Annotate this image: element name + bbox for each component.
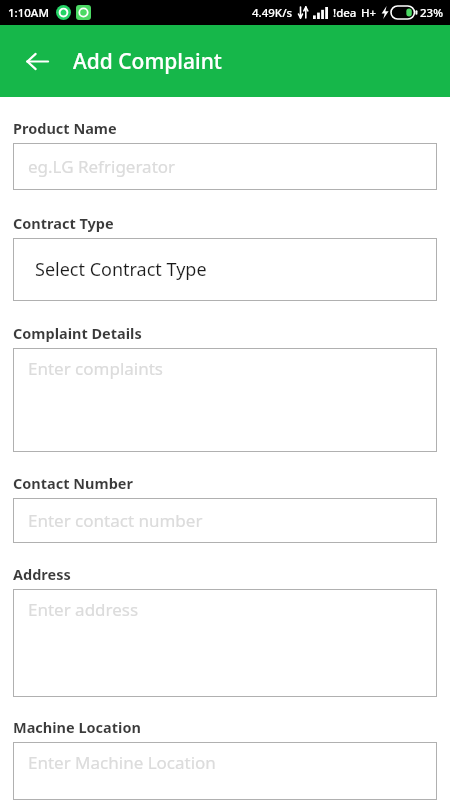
- staticText: 4.49K/s: [252, 5, 293, 21]
- staticText: Enter address: [28, 598, 139, 621]
- staticText: Contract Type: [13, 213, 114, 233]
- staticText: eg.LG Refrigerator: [28, 155, 176, 178]
- button[interactable]: eg.LG Refrigerator: [13, 143, 437, 190]
- button[interactable]: Back: [14, 38, 60, 84]
- staticText: Enter contact number: [28, 509, 203, 532]
- staticText: Enter complaints: [28, 357, 164, 380]
- staticText: 23%: [420, 5, 443, 21]
- button[interactable]: Enter address: [13, 589, 437, 697]
- button[interactable]: Select Contract Type: [13, 238, 437, 301]
- staticText: Enter Machine Location: [28, 751, 216, 774]
- staticText: Product Name: [13, 118, 117, 138]
- button[interactable]: Enter Machine Location: [13, 742, 437, 800]
- staticText: Select Contract Type: [35, 257, 207, 282]
- staticText: Address: [13, 564, 71, 584]
- staticText: Contact Number: [13, 473, 133, 493]
- staticText: 1:10AM: [8, 5, 49, 21]
- staticText: Complaint Details: [13, 323, 142, 343]
- button[interactable]: Enter contact number: [13, 498, 437, 543]
- staticText: H+: [361, 5, 377, 21]
- staticText: !dea: [333, 5, 357, 21]
- button[interactable]: Enter complaints: [13, 348, 437, 452]
- staticText: Machine Location: [13, 717, 141, 737]
- staticText: Add Complaint: [73, 47, 222, 76]
